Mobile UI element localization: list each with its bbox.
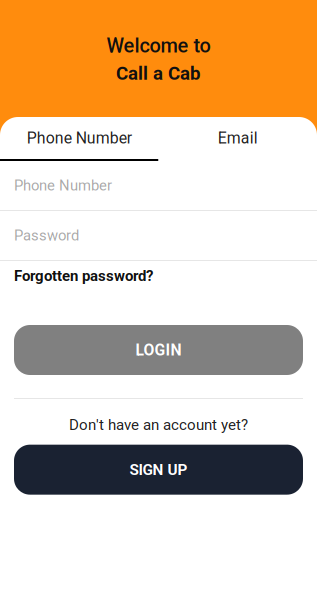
staticText: Welcome to [106,34,210,57]
staticText: Phone Number [27,129,132,147]
staticText: Forgotten password? [14,267,153,285]
button[interactable]: Forgotten password? [0,261,317,291]
staticText: LOGIN [135,341,181,359]
staticText: Email [218,129,258,147]
button[interactable]: SIGN UP [14,445,303,495]
button[interactable]: Email [158,117,317,161]
button[interactable]: Phone Number [0,161,317,210]
button[interactable]: Password [0,211,317,260]
button[interactable]: Phone Number [0,117,158,161]
staticText: Password [14,227,79,244]
staticText: Don't have an account yet? [69,416,248,434]
staticText: Phone Number [14,177,112,194]
staticText: SIGN UP [129,461,187,479]
staticText: Call a Cab [116,62,201,84]
button[interactable]: LOGIN [14,325,303,375]
